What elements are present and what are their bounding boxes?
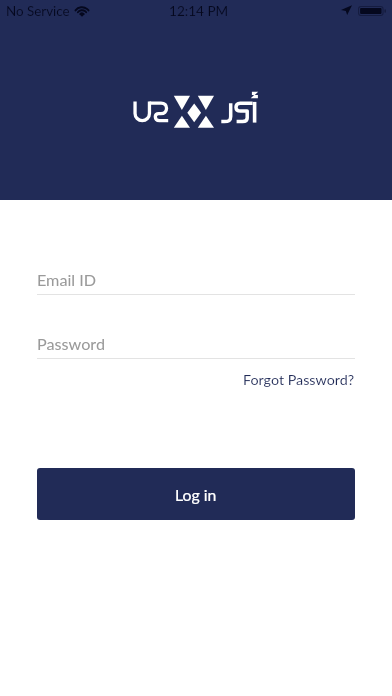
button[interactable]: Password: [37, 334, 355, 359]
button[interactable]: Forgot Password?: [243, 371, 355, 388]
button[interactable]: Log in: [37, 468, 355, 520]
other: UR Akbar logo: [133, 91, 261, 131]
staticText: Password: [37, 334, 105, 353]
staticText: Email ID: [37, 270, 97, 289]
staticText: Forgot Password?: [243, 371, 355, 388]
staticText: Log in: [175, 485, 217, 504]
staticText: No Service: [6, 3, 70, 19]
button[interactable]: Email ID: [37, 270, 355, 295]
staticText: 12:14 PM: [169, 3, 229, 19]
